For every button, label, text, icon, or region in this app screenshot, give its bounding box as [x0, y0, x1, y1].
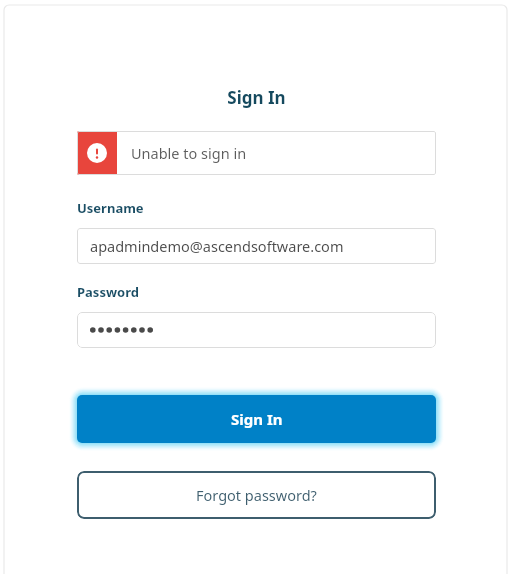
button[interactable]: apadmindemo@ascendsoftware.com	[77, 228, 436, 264]
button[interactable]: Forgot password?	[77, 471, 436, 519]
staticText: apadmindemo@ascendsoftware.com	[90, 236, 344, 256]
staticText: Password	[77, 283, 139, 301]
staticText: Unable to sign in	[131, 143, 247, 163]
button[interactable]: Password field	[77, 312, 436, 348]
button[interactable]: Sign In	[77, 395, 436, 443]
staticText: Sign In	[231, 409, 283, 429]
staticText: Username	[77, 199, 144, 217]
staticText: Sign In	[77, 86, 436, 109]
staticText: Forgot password?	[196, 485, 317, 505]
